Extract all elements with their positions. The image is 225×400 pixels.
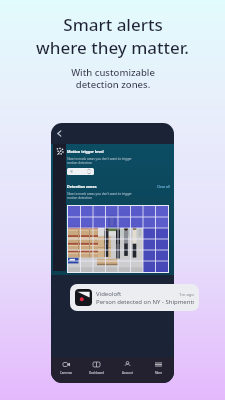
staticText: Cameras xyxy=(60,371,72,375)
staticText: Videoloft xyxy=(96,290,122,298)
button[interactable]: Cameras xyxy=(51,357,81,375)
staticText: Smart alerts xyxy=(63,13,163,36)
button[interactable]: Videoloft xyxy=(70,284,199,311)
staticText: With customizable detection zones. xyxy=(71,66,155,91)
staticText: More xyxy=(155,371,163,375)
staticText: Detection zones xyxy=(67,184,97,189)
staticText: Person detected on NY - Shipments xyxy=(96,298,194,306)
button[interactable] xyxy=(67,168,94,175)
button[interactable]: Clear all xyxy=(157,184,170,189)
staticText: 1m ago xyxy=(179,292,194,298)
button[interactable]: Dashboard xyxy=(81,357,112,375)
staticText: where they matter. xyxy=(36,36,189,59)
button[interactable]: Back xyxy=(54,128,65,139)
staticText: Slow to mask areas you don't want to tri… xyxy=(67,192,132,200)
button[interactable]: More xyxy=(143,357,174,375)
staticText: Dashboard xyxy=(89,371,104,375)
staticText: Slow to mask areas you don't want to tri… xyxy=(67,157,132,165)
staticText: Account xyxy=(122,371,133,375)
button[interactable]: Account xyxy=(112,357,143,375)
staticText: Motion trigger level xyxy=(67,149,104,154)
